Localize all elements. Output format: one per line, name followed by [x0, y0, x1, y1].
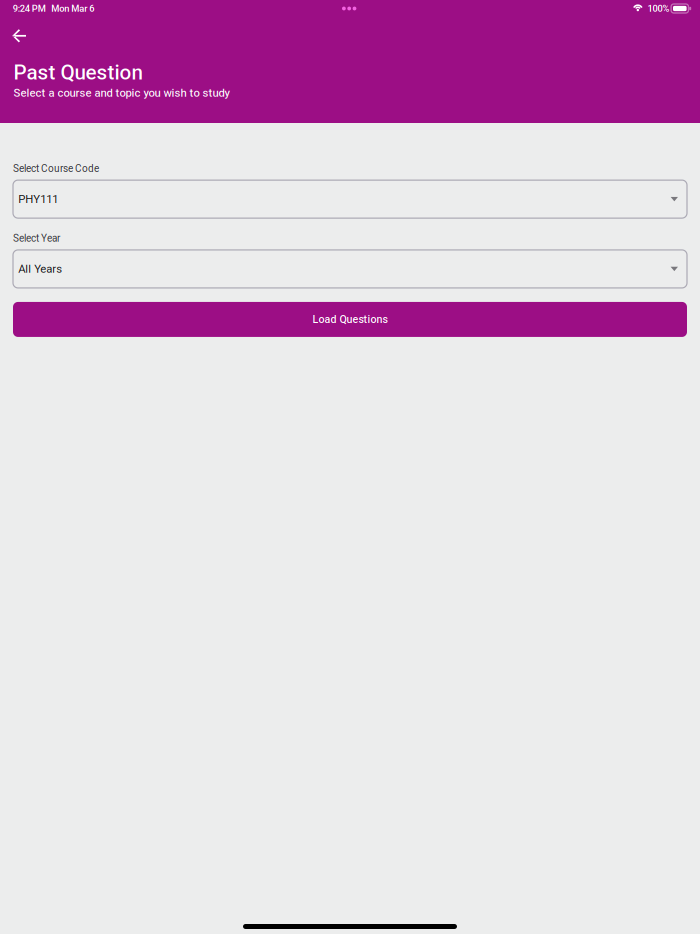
staticText: 100% — [647, 3, 669, 14]
button[interactable]: PHY111 — [13, 180, 687, 218]
staticText: Select Course Code — [13, 163, 99, 174]
staticText: Mon Mar 6 — [51, 3, 94, 14]
staticText: Load Questions — [312, 313, 387, 326]
staticText: Select Year — [13, 232, 60, 244]
button[interactable]: All Years — [13, 250, 687, 288]
staticText: PHY111 — [18, 192, 58, 206]
button[interactable]: Back — [7, 24, 31, 47]
staticText: 9:24 PM — [13, 3, 46, 14]
staticText: Past Question — [13, 60, 142, 84]
staticText: All Years — [18, 262, 62, 276]
button[interactable]: Load Questions — [13, 302, 687, 337]
staticText: Select a course and topic you wish to st… — [13, 86, 229, 99]
